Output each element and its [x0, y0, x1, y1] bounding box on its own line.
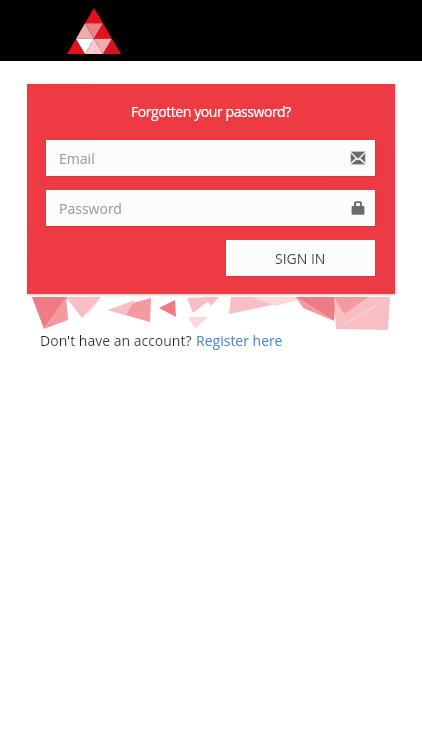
staticText: Email	[59, 149, 95, 168]
button[interactable]: Register here	[196, 331, 283, 350]
button[interactable]: Password	[46, 190, 375, 226]
button[interactable]: SIGN IN	[226, 240, 375, 276]
button[interactable]: Email	[46, 140, 375, 176]
staticText: SIGN IN	[275, 249, 326, 268]
staticText: Don't have an account?	[40, 331, 196, 350]
button[interactable]: Forgotten your password?	[125, 100, 297, 123]
staticText: Password	[59, 199, 122, 218]
